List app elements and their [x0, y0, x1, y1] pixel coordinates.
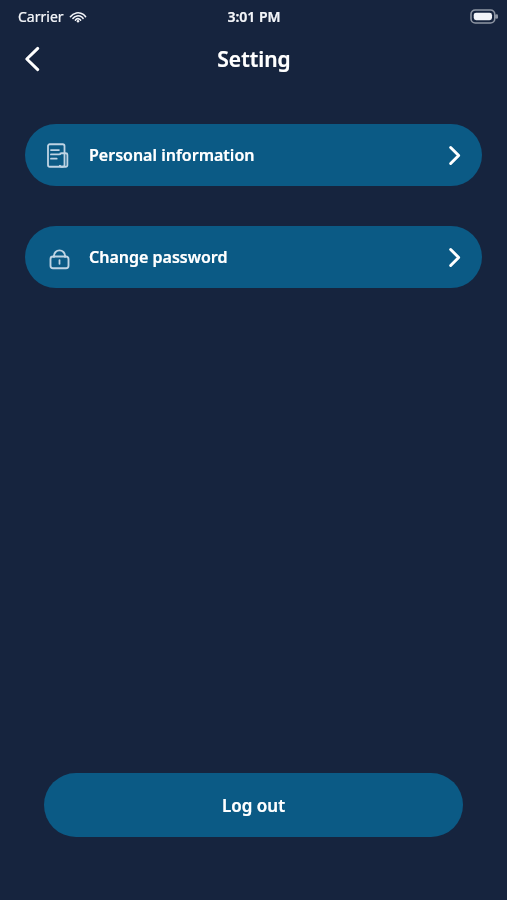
staticText: Setting — [217, 45, 291, 74]
staticText: Change password — [89, 246, 449, 268]
staticText: 3:01 PM — [227, 7, 281, 26]
button[interactable]: Personal information — [25, 124, 482, 186]
button[interactable]: Change password — [25, 226, 482, 288]
staticText: Personal information — [89, 144, 449, 166]
staticText: Carrier — [18, 7, 64, 26]
button[interactable]: Log out — [44, 773, 463, 837]
button[interactable]: Back — [10, 37, 54, 81]
staticText: Log out — [222, 794, 286, 817]
